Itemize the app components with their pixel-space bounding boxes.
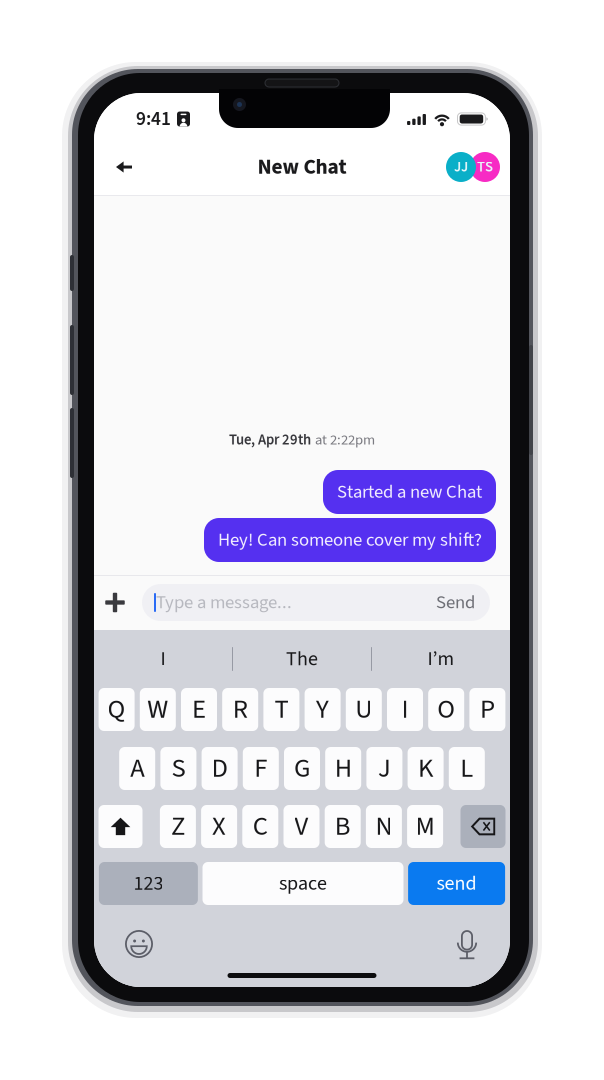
staticText: Send — [436, 589, 475, 616]
staticText: U — [355, 690, 372, 728]
staticText: E — [192, 690, 206, 728]
button[interactable]: H — [325, 747, 361, 790]
staticText: TS — [477, 157, 493, 177]
button[interactable]: U — [346, 688, 382, 731]
button[interactable]: M — [407, 805, 443, 848]
button[interactable]: L — [449, 747, 485, 790]
button[interactable]: Y — [305, 688, 341, 731]
button[interactable]: J — [366, 747, 402, 790]
button[interactable]: Dictation — [457, 930, 477, 960]
staticText: B — [335, 807, 351, 845]
button[interactable]: G — [284, 747, 320, 790]
staticText: W — [147, 690, 168, 728]
staticText: New Chat — [257, 152, 346, 182]
staticText: F — [254, 749, 267, 787]
button[interactable]: Chat participants — [446, 145, 500, 189]
button[interactable]: I’m — [372, 630, 510, 688]
button[interactable]: Emoji keyboard — [125, 930, 153, 958]
button[interactable]: Z — [160, 805, 196, 848]
staticText: at 2:22pm — [315, 430, 375, 450]
button[interactable]: N — [366, 805, 402, 848]
staticText: A — [130, 749, 144, 787]
staticText: Started a new Chat — [337, 479, 482, 505]
button[interactable]: Add attachment — [99, 580, 131, 624]
staticText: The — [286, 645, 318, 673]
button[interactable]: K — [408, 747, 444, 790]
staticText: P — [480, 690, 495, 728]
button[interactable]: Delete — [460, 805, 505, 848]
staticText: M — [416, 807, 435, 845]
button[interactable]: I — [94, 630, 232, 688]
button[interactable]: Send — [436, 584, 475, 621]
staticText: I — [401, 690, 408, 728]
button[interactable]: R — [222, 688, 258, 731]
staticText: K — [418, 749, 433, 787]
staticText: I’m — [427, 645, 454, 673]
staticText: JJ — [454, 157, 468, 177]
staticText: Type a message... — [156, 589, 292, 616]
staticText: J — [378, 749, 391, 787]
staticText: Z — [171, 807, 185, 845]
staticText: O — [437, 690, 455, 728]
staticText: space — [279, 869, 327, 898]
staticText: Hey! Can someone cover my shift? — [218, 527, 482, 553]
button[interactable]: space — [202, 862, 403, 905]
button[interactable]: C — [242, 805, 278, 848]
staticText: 9:41 — [136, 105, 171, 133]
button[interactable]: O — [428, 688, 464, 731]
staticText: D — [212, 749, 228, 787]
staticText: R — [233, 690, 248, 728]
staticText: G — [294, 749, 310, 787]
button[interactable]: Shift — [98, 805, 142, 848]
staticText: Q — [108, 690, 126, 728]
staticText: C — [253, 807, 268, 845]
staticText: L — [460, 749, 473, 787]
button[interactable]: P — [469, 688, 505, 731]
staticText: I — [160, 645, 165, 673]
button[interactable]: W — [140, 688, 176, 731]
staticText: X — [212, 807, 226, 845]
button[interactable]: Back — [102, 145, 146, 189]
button[interactable]: send — [408, 862, 505, 905]
button[interactable]: A — [119, 747, 155, 790]
staticText: T — [274, 690, 288, 728]
staticText: Tue, Apr 29th — [229, 430, 311, 450]
button[interactable]: S — [160, 747, 196, 790]
staticText: 123 — [133, 869, 163, 898]
staticText: H — [335, 749, 352, 787]
staticText: N — [375, 807, 392, 845]
button[interactable]: Q — [99, 688, 135, 731]
button[interactable]: B — [325, 805, 361, 848]
staticText: send — [437, 869, 477, 898]
button[interactable]: D — [202, 747, 238, 790]
button[interactable]: F — [243, 747, 279, 790]
staticText: Y — [316, 690, 329, 728]
button[interactable]: V — [283, 805, 319, 848]
button[interactable]: The — [233, 630, 371, 688]
button[interactable]: I — [387, 688, 423, 731]
staticText: V — [294, 807, 308, 845]
button[interactable]: E — [181, 688, 217, 731]
button[interactable]: 123 — [99, 862, 198, 905]
button[interactable]: X — [201, 805, 237, 848]
staticText: S — [171, 749, 185, 787]
button[interactable]: T — [263, 688, 299, 731]
